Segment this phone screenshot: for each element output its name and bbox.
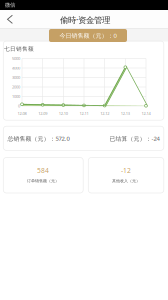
staticText: 1000: [12, 94, 20, 99]
staticText: 12-13: [121, 111, 130, 116]
staticText: 总销售额（元）：572.0: [7, 134, 69, 142]
staticText: 微信: [5, 2, 15, 8]
staticText: 今日销售额（元）：0: [59, 31, 116, 40]
staticText: 2000: [12, 84, 20, 90]
staticText: 12-14: [141, 111, 150, 116]
staticText: -12: [121, 166, 131, 175]
staticText: 584: [37, 166, 49, 175]
staticText: 12-12: [100, 111, 109, 116]
staticText: 七日销售额: [4, 45, 34, 53]
staticText: 12-10: [59, 111, 68, 116]
staticText: 0: [18, 103, 20, 109]
staticText: 5000: [12, 56, 20, 61]
staticText: 12-11: [79, 111, 88, 116]
staticText: 12-09: [38, 111, 47, 116]
staticText: 12-08: [17, 111, 26, 116]
staticText: 已结算（元）：-24: [109, 134, 159, 142]
staticText: 4000: [12, 65, 20, 71]
staticText: 订单销售额（元）: [27, 178, 59, 183]
button[interactable]: Back: [0, 0, 168, 300]
staticText: 3000: [12, 75, 20, 80]
staticText: 其他收入（元）: [112, 178, 140, 183]
staticText: 偷時·资金管理: [60, 14, 110, 25]
